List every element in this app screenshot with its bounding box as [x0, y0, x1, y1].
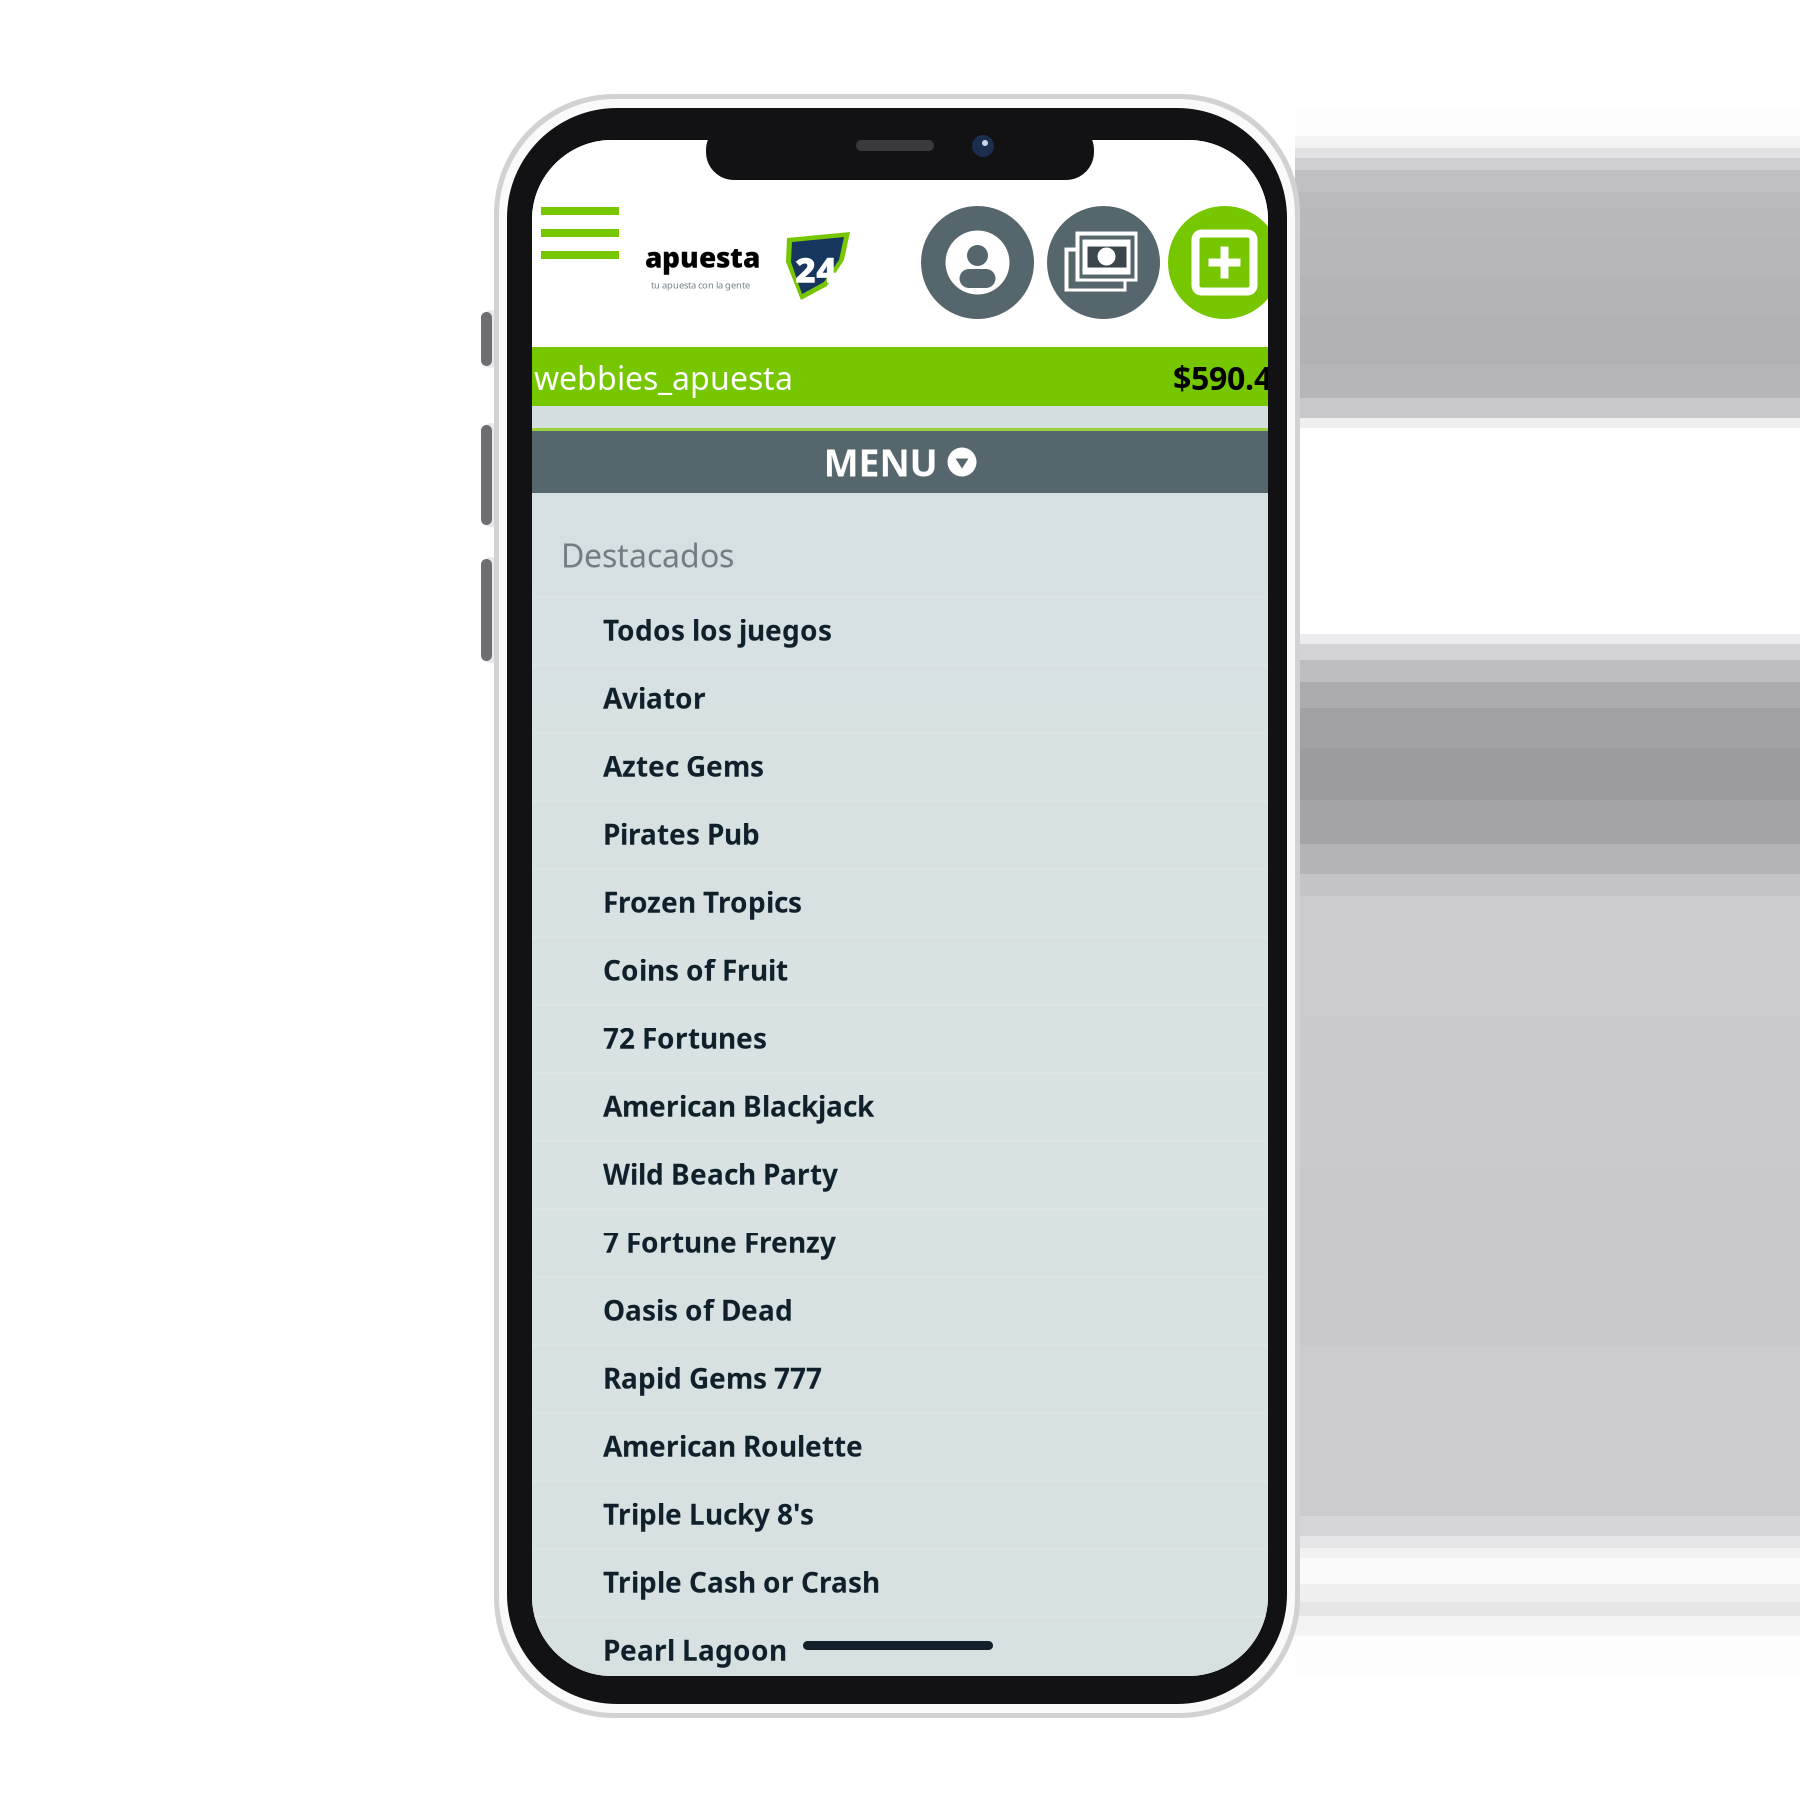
button[interactable]: Account	[921, 206, 1034, 319]
button[interactable]: Triple Cash or Crash	[532, 1548, 1268, 1616]
button[interactable]: Oasis of Dead	[532, 1276, 1268, 1344]
staticText: American Blackjack	[603, 1087, 874, 1125]
staticText: Rapid Gems 777	[603, 1359, 822, 1397]
button[interactable]: Menu	[525, 185, 635, 281]
button[interactable]: Aviator	[532, 664, 1268, 732]
button[interactable]: American Blackjack	[532, 1072, 1268, 1140]
button[interactable]: Deposit	[1168, 206, 1281, 319]
staticText: apuesta	[645, 238, 760, 276]
staticText: 7 Fortune Frenzy	[603, 1223, 836, 1261]
staticText: Pirates Pub	[603, 815, 760, 853]
staticText: MENU	[823, 437, 937, 487]
staticText: $590.45	[1173, 356, 1290, 399]
button[interactable]: Pearl Lagoon	[532, 1616, 1268, 1684]
button[interactable]: Frozen Tropics	[532, 868, 1268, 936]
button[interactable]: Wild Beach Party	[532, 1140, 1268, 1208]
button[interactable]: Pirates Pub	[532, 800, 1268, 868]
staticText: webbies_apuesta	[534, 356, 793, 399]
staticText: Coins of Fruit	[603, 951, 788, 989]
button[interactable]: Triple Lucky 8's	[532, 1480, 1268, 1548]
staticText: Aviator	[603, 679, 706, 717]
staticText: 72 Fortunes	[603, 1019, 767, 1057]
button[interactable]: Cashier	[1047, 206, 1160, 319]
button[interactable]: 72 Fortunes	[532, 1004, 1268, 1072]
button[interactable]: Todos los juegos	[532, 596, 1268, 664]
button[interactable]: MENU	[532, 431, 1268, 493]
staticText: Wild Beach Party	[603, 1155, 838, 1193]
staticText: Aztec Gems	[603, 747, 764, 785]
staticText: Triple Cash or Crash	[603, 1563, 880, 1601]
button[interactable]: American Roulette	[532, 1412, 1268, 1480]
staticText: 24	[795, 245, 837, 293]
staticText: tu apuesta con la gente	[651, 279, 750, 291]
staticText: Frozen Tropics	[603, 883, 802, 921]
staticText: Destacados	[561, 534, 734, 576]
staticText: Oasis of Dead	[603, 1291, 793, 1329]
staticText: Todos los juegos	[603, 611, 832, 649]
button[interactable]: Rapid Gems 777	[532, 1344, 1268, 1412]
button[interactable]: 7 Fortune Frenzy	[532, 1208, 1268, 1276]
staticText: American Roulette	[603, 1427, 863, 1465]
staticText: Pearl Lagoon	[603, 1631, 787, 1669]
button[interactable]: Coins of Fruit	[532, 936, 1268, 1004]
button[interactable]: Aztec Gems	[532, 732, 1268, 800]
staticText: Triple Lucky 8's	[603, 1495, 814, 1533]
